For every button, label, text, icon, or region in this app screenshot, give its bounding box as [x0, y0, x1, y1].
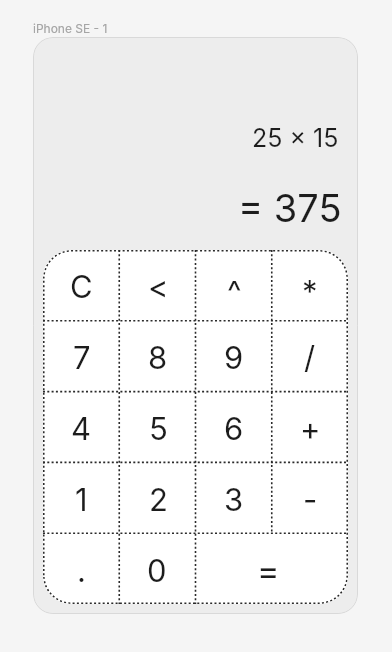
button[interactable]: / — [272, 320, 348, 391]
button[interactable]: - — [272, 462, 348, 533]
staticText: 3 — [224, 481, 244, 519]
staticText: 8 — [148, 339, 168, 377]
staticText: 9 — [224, 339, 244, 377]
button[interactable]: 7 — [43, 320, 120, 391]
staticText: 2 — [149, 481, 168, 519]
button[interactable]: ^ — [196, 250, 272, 320]
staticText: 25 × 15 — [252, 123, 339, 153]
staticText: = — [257, 550, 280, 591]
button[interactable]: = — [195, 533, 348, 604]
button[interactable]: . — [43, 533, 119, 604]
staticText: - — [303, 481, 318, 519]
staticText: ^ — [227, 273, 242, 311]
button[interactable]: * — [272, 250, 348, 320]
staticText: < — [148, 268, 169, 306]
staticText: 1 — [75, 481, 88, 519]
button[interactable]: 1 — [43, 462, 120, 533]
button[interactable]: C — [43, 250, 120, 320]
staticText: 7 — [73, 339, 91, 377]
button[interactable]: 8 — [120, 320, 196, 391]
button[interactable]: 9 — [196, 320, 272, 391]
staticText: . — [77, 552, 86, 590]
staticText: C — [70, 268, 93, 306]
staticText: * — [302, 273, 318, 311]
button[interactable]: < — [120, 250, 196, 320]
button[interactable]: + — [272, 391, 348, 462]
staticText: + — [300, 410, 321, 448]
button[interactable]: 5 — [120, 391, 196, 462]
button[interactable]: 0 — [119, 533, 195, 604]
staticText: 5 — [149, 410, 168, 448]
staticText: 4 — [71, 410, 92, 448]
button[interactable]: 2 — [120, 462, 196, 533]
staticText: / — [304, 339, 316, 377]
staticText: = 375 — [238, 185, 342, 231]
button[interactable]: 3 — [196, 462, 272, 533]
button[interactable]: 6 — [196, 391, 272, 462]
staticText: 6 — [224, 410, 244, 448]
staticText: 0 — [147, 552, 167, 590]
button[interactable]: 4 — [43, 391, 120, 462]
staticText: iPhone SE - 1 — [33, 21, 108, 36]
